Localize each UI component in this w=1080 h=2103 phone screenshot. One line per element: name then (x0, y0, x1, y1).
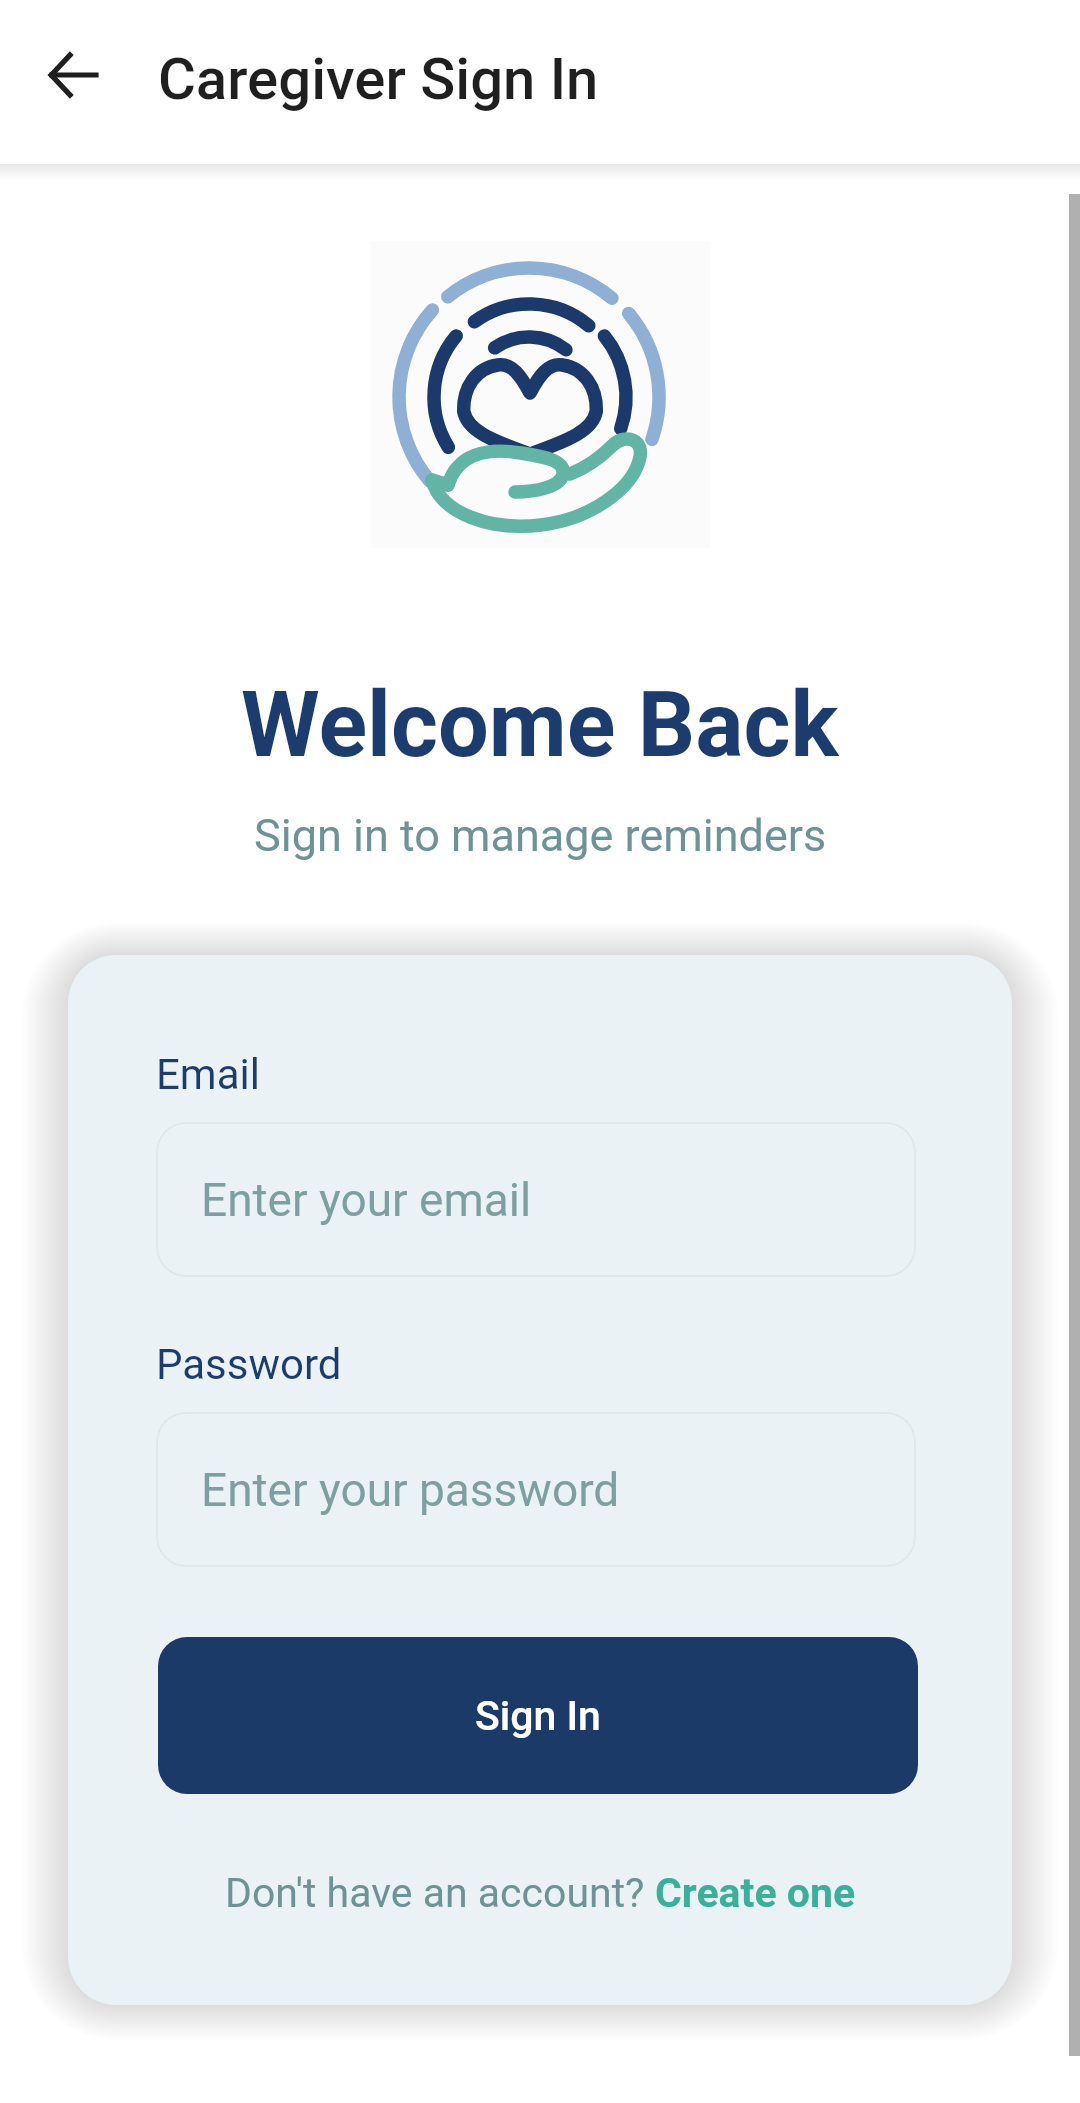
staticText: Create one (655, 1869, 856, 1917)
staticText: Enter your email (201, 1173, 532, 1227)
staticText: Email (156, 1050, 260, 1099)
button[interactable]: Sign In (158, 1637, 918, 1794)
staticText: Sign In (475, 1692, 601, 1740)
staticText: Caregiver Sign In (158, 45, 599, 113)
button[interactable]: Don't have an account? (68, 1863, 1012, 1923)
staticText: Password (156, 1340, 342, 1389)
staticText: Enter your password (201, 1463, 620, 1517)
button[interactable]: Enter your email (156, 1122, 916, 1277)
button[interactable]: Back (23, 25, 123, 125)
staticText: Don't have an account? (225, 1869, 655, 1917)
button[interactable]: Enter your password (156, 1412, 916, 1567)
staticText: Welcome Back (241, 673, 839, 778)
staticText: Sign in to manage reminders (254, 809, 827, 862)
